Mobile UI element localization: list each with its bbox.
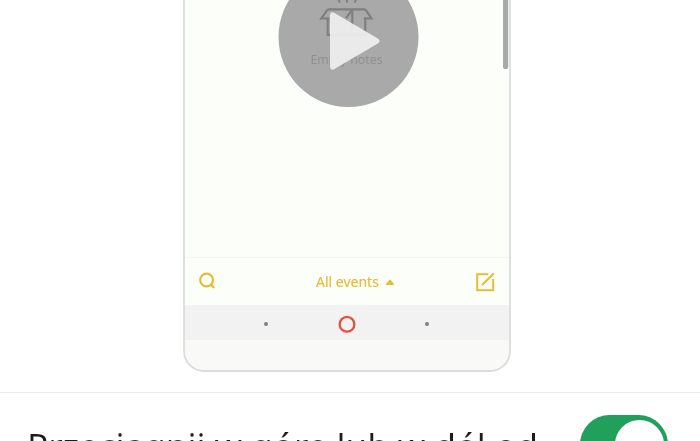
staticText: All events <box>316 272 379 291</box>
button[interactable]: Search <box>186 258 230 305</box>
button[interactable]: All events <box>310 258 400 305</box>
button[interactable]: Switch on <box>580 415 668 441</box>
staticText: Przeciągnij w górę lub w dół od <box>27 422 538 441</box>
staticText: Empty notes <box>300 51 393 68</box>
button[interactable]: Home <box>331 305 363 340</box>
button[interactable]: Compose <box>463 258 507 305</box>
button[interactable]: Recents <box>255 305 277 340</box>
button[interactable]: Back <box>416 305 438 340</box>
